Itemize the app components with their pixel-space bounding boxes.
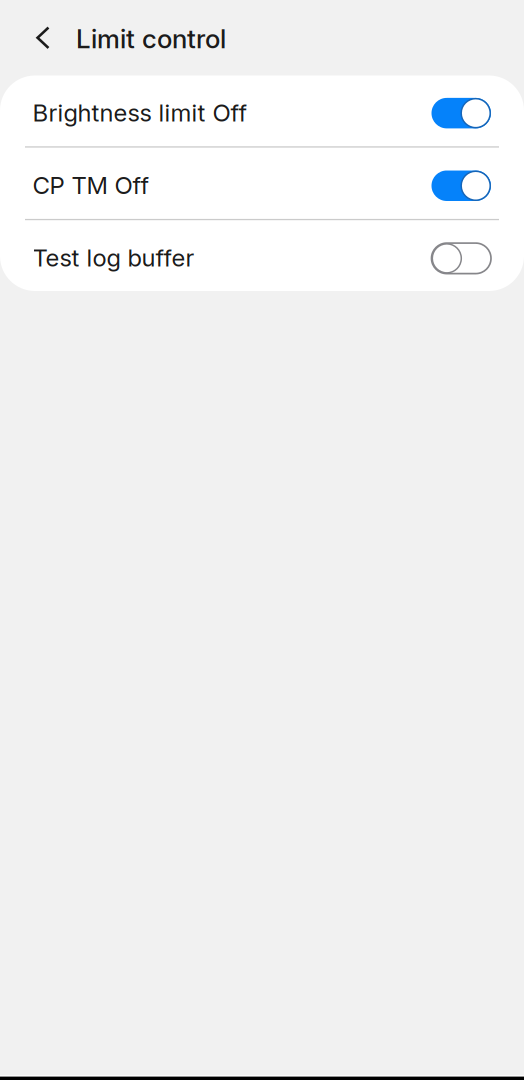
button[interactable]: Brightness limit Off bbox=[0, 75, 524, 146]
staticText: CP TM Off bbox=[32, 171, 149, 200]
button[interactable]: Back bbox=[21, 16, 65, 60]
button[interactable]: Test log buffer bbox=[0, 220, 524, 291]
staticText: Limit control bbox=[76, 23, 226, 54]
staticText: Brightness limit Off bbox=[32, 98, 247, 127]
button[interactable]: CP TM Off bbox=[0, 148, 524, 219]
staticText: Test log buffer bbox=[32, 243, 194, 272]
